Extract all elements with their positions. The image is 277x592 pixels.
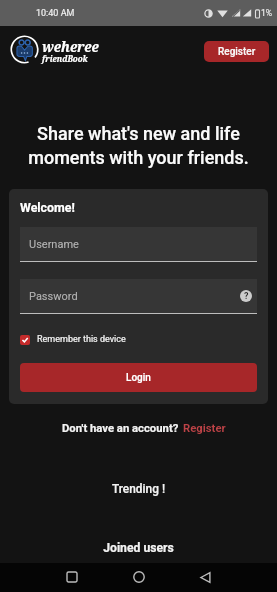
button[interactable]: Register: [204, 41, 269, 62]
staticText: Password: [29, 290, 78, 303]
staticText: Register: [218, 46, 256, 58]
button[interactable]: Home: [125, 563, 153, 591]
button[interactable]: Help: [240, 290, 252, 302]
staticText: Welcome!: [20, 200, 75, 215]
button[interactable]: Username: [20, 227, 257, 261]
button[interactable]: Back: [191, 563, 219, 591]
staticText: Username: [29, 238, 79, 251]
button[interactable]: Remember this device: [20, 334, 126, 345]
staticText: weheree: [42, 38, 99, 56]
staticText: 10:40 AM: [36, 8, 75, 19]
button[interactable]: Password: [20, 279, 257, 313]
button[interactable]: Recent apps: [58, 563, 86, 591]
staticText: ?: [244, 291, 249, 302]
staticText: Joined users: [0, 541, 277, 555]
staticText: 1%: [261, 8, 273, 18]
staticText: Register: [183, 422, 226, 435]
staticText: Share what's new and life moments with y…: [0, 123, 277, 168]
staticText: Trending !: [0, 482, 277, 496]
button[interactable]: Login: [20, 363, 257, 392]
staticText: Remember this device: [37, 334, 126, 345]
button[interactable]: Register: [183, 422, 226, 435]
staticText: Don't have an account?: [62, 422, 179, 435]
staticText: friendBook: [42, 53, 88, 64]
staticText: Login: [126, 372, 151, 384]
